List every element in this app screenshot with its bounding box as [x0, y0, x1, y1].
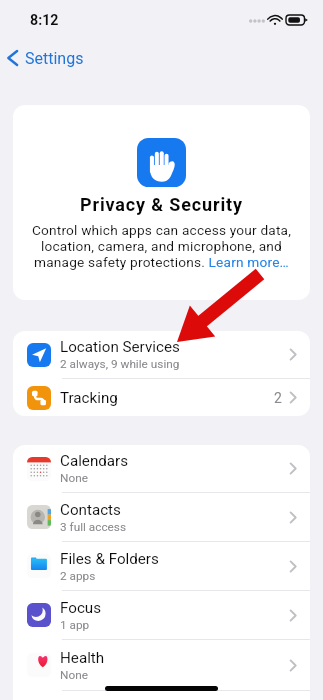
staticText: Location Services [60, 338, 180, 356]
staticText: Contacts [60, 501, 121, 519]
staticText: Tracking [60, 389, 118, 407]
staticText: Focus [60, 599, 102, 617]
staticText: Calendars [60, 452, 129, 470]
staticText: 2 [274, 390, 282, 406]
staticText: Settings [25, 49, 84, 68]
button[interactable]: Back [0, 42, 84, 74]
other: Back [7, 50, 18, 66]
button[interactable]: Location Services [13, 331, 310, 378]
button[interactable]: Contacts [13, 493, 310, 541]
button[interactable]: Health [13, 640, 310, 690]
button[interactable]: Tracking [13, 379, 310, 416]
staticText: 8:12 [30, 12, 59, 29]
button[interactable]: Calendars [13, 445, 310, 492]
staticText: None [60, 668, 88, 682]
staticText: 2 always, 9 while using [60, 357, 180, 371]
staticText: None [60, 471, 88, 485]
staticText: Files & Folders [60, 550, 159, 568]
button[interactable]: Focus [13, 591, 310, 639]
staticText: Health [60, 649, 105, 667]
staticText: 1 app [60, 618, 90, 632]
button[interactable]: Files & Folders [13, 542, 310, 590]
staticText: 3 full access [60, 520, 127, 534]
staticText: Privacy & Security [80, 194, 243, 215]
staticText: 2 apps [60, 569, 96, 583]
staticText: Control which apps can access your data,… [19, 222, 304, 270]
